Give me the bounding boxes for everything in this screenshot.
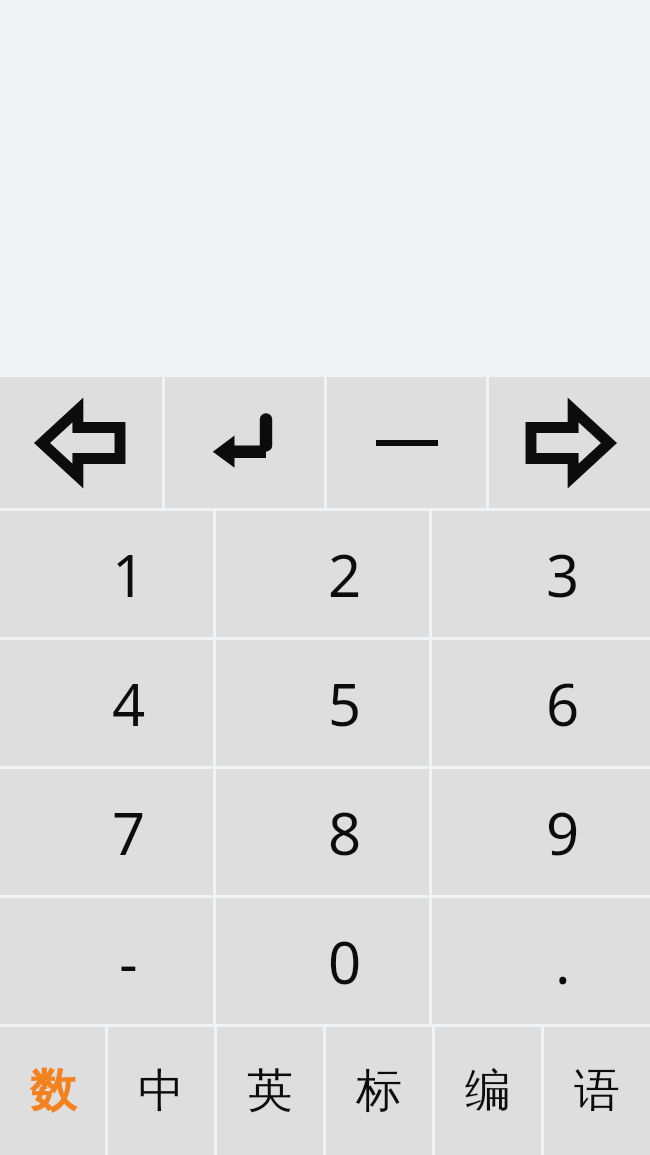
staticText: 数	[30, 1062, 76, 1120]
button[interactable]: Move cursor left	[0, 377, 162, 508]
staticText: 0	[328, 922, 362, 1001]
button[interactable]: 标	[326, 1027, 432, 1155]
button[interactable]: 语	[544, 1027, 650, 1155]
staticText: 标	[356, 1062, 402, 1120]
button[interactable]: 4	[0, 640, 213, 766]
button[interactable]: 编	[435, 1027, 541, 1155]
button[interactable]: Enter	[165, 377, 324, 508]
button[interactable]: 3	[432, 511, 650, 637]
button[interactable]: 7	[0, 769, 213, 895]
button[interactable]: Move cursor right	[489, 377, 650, 508]
button[interactable]: Space	[327, 377, 486, 508]
staticText: 1	[112, 535, 146, 614]
button[interactable]: 6	[432, 640, 650, 766]
staticText: 6	[546, 664, 580, 743]
button[interactable]: 1	[0, 511, 213, 637]
button[interactable]: 中	[108, 1027, 214, 1155]
button[interactable]: 2	[216, 511, 429, 637]
button[interactable]: 5	[216, 640, 429, 766]
staticText: 7	[112, 793, 146, 872]
button[interactable]: .	[432, 898, 650, 1024]
staticText: 5	[328, 664, 362, 743]
button[interactable]: 9	[432, 769, 650, 895]
staticText: 3	[546, 535, 580, 614]
staticText: 语	[574, 1062, 620, 1120]
staticText: 8	[328, 793, 362, 872]
button[interactable]: 英	[217, 1027, 323, 1155]
staticText: 中	[138, 1062, 184, 1120]
staticText: .	[555, 922, 571, 1001]
button[interactable]: 0	[216, 898, 429, 1024]
button[interactable]: 数	[0, 1027, 105, 1155]
button[interactable]: 8	[216, 769, 429, 895]
staticText: 英	[247, 1062, 293, 1120]
staticText: 4	[112, 664, 146, 743]
staticText: 2	[328, 535, 362, 614]
staticText: 9	[546, 793, 580, 872]
button[interactable]: -	[0, 898, 213, 1024]
staticText: -	[119, 922, 138, 1001]
staticText: 编	[465, 1062, 511, 1120]
